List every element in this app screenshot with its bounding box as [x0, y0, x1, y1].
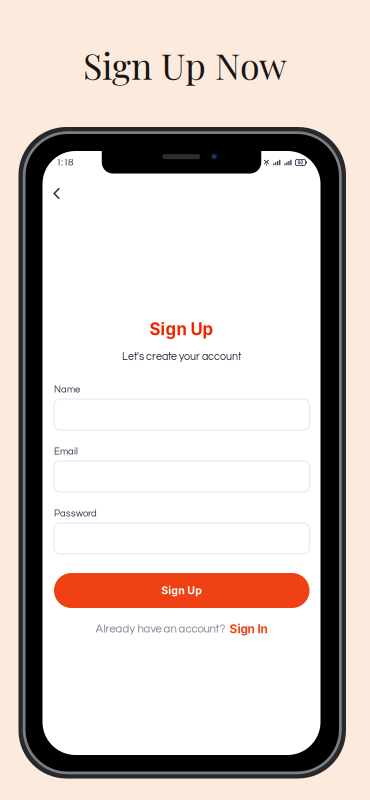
staticText: 1:18 [56, 157, 73, 168]
staticText: Sign Up [149, 319, 213, 339]
button[interactable]: Name [54, 399, 309, 430]
staticText: Email [54, 447, 78, 456]
button[interactable]: Back [44, 180, 70, 206]
button[interactable]: Email [54, 461, 309, 492]
staticText: Sign In [229, 622, 267, 636]
staticText: Sign Up Now [83, 41, 287, 89]
staticText: Let's create your account [122, 351, 241, 362]
staticText: 92 [297, 160, 303, 165]
staticText: Already have an account? [95, 623, 225, 635]
button[interactable]: Password [54, 523, 309, 554]
button[interactable]: Sign Up [54, 573, 309, 608]
staticText: Password [54, 509, 97, 518]
staticText: Name [54, 385, 80, 394]
staticText: Sign Up [161, 584, 202, 597]
button[interactable]: Already have an account? [42, 621, 320, 637]
